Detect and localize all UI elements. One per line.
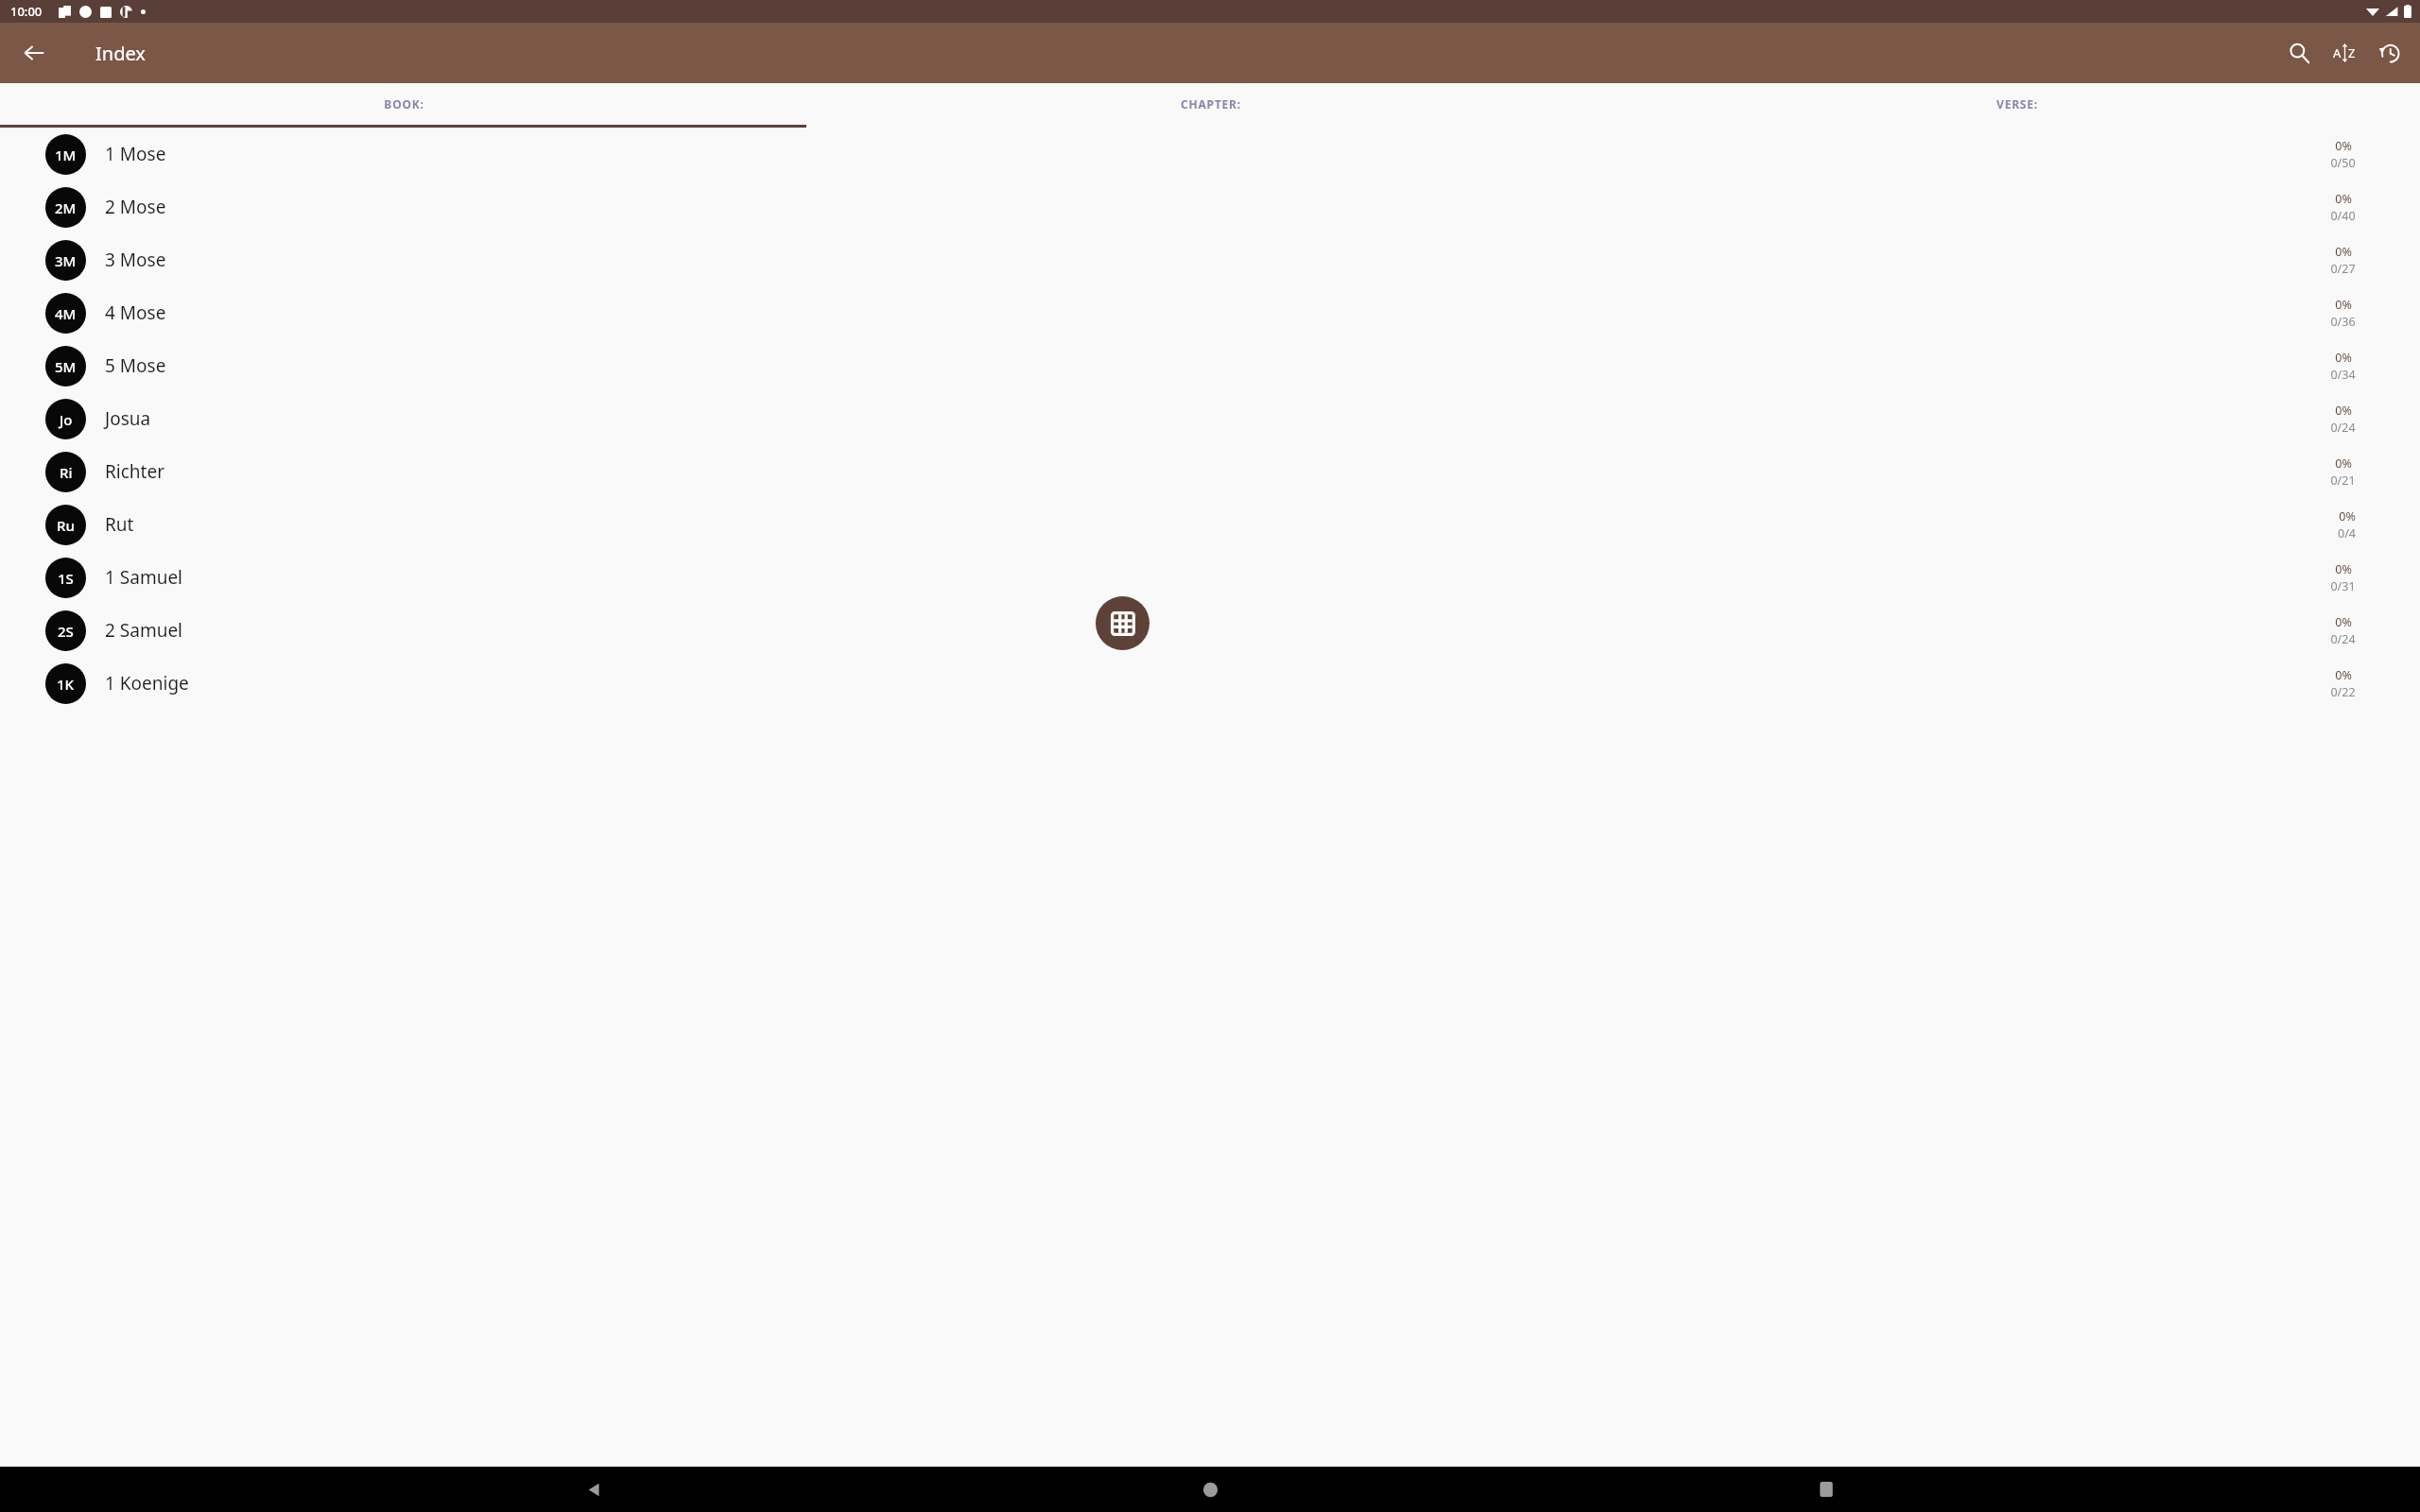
staticText: 0/27 (2330, 261, 2356, 277)
staticText: Ri (60, 463, 73, 482)
staticText: 2M (55, 198, 77, 217)
staticText: 0% (2339, 508, 2356, 524)
button[interactable]: Back (571, 1467, 616, 1512)
button[interactable]: Ru (0, 498, 2420, 551)
button[interactable]: 3M (0, 233, 2420, 286)
staticText: BOOK: (384, 96, 424, 112)
staticText: 5 Mose (105, 353, 166, 378)
button[interactable]: VERSE: (1614, 83, 2420, 125)
staticText: Richter (105, 459, 165, 484)
button[interactable]: BOOK: (0, 83, 807, 125)
button[interactable]: 1M (0, 128, 2420, 180)
staticText: 2S (58, 622, 74, 641)
button[interactable]: 2S (0, 604, 2420, 657)
staticText: 0% (2335, 614, 2352, 630)
staticText: 1 Koenige (105, 671, 189, 696)
staticText: 0/34 (2330, 367, 2356, 383)
button[interactable]: History (2367, 30, 2412, 76)
button[interactable]: Search (2276, 30, 2322, 76)
staticText: 0% (2335, 561, 2352, 577)
button[interactable]: CHAPTER: (807, 83, 1614, 125)
button[interactable]: Recent apps (1804, 1467, 1849, 1512)
button[interactable]: 4M (0, 286, 2420, 339)
staticText: 0% (2335, 244, 2352, 260)
button[interactable]: 5M (0, 339, 2420, 392)
staticText: 1S (58, 569, 74, 588)
staticText: 0% (2335, 667, 2352, 683)
button[interactable]: 2M (0, 180, 2420, 233)
staticText: 0/21 (2330, 472, 2356, 489)
staticText: 1K (57, 675, 75, 694)
staticText: 0% (2335, 297, 2352, 313)
staticText: 0/22 (2330, 684, 2356, 700)
staticText: 1M (55, 146, 77, 164)
staticText: Josua (105, 406, 151, 431)
button[interactable]: Jo (0, 392, 2420, 445)
staticText: Index (95, 41, 146, 66)
staticText: Z (2348, 44, 2356, 61)
button[interactable]: Grid view (1096, 596, 1149, 650)
button[interactable]: Ri (0, 445, 2420, 498)
staticText: 0/36 (2330, 314, 2356, 330)
staticText: Ru (57, 516, 75, 535)
staticText: 0% (2335, 403, 2352, 419)
button[interactable]: Home (1187, 1467, 1233, 1512)
staticText: 10:00 (10, 3, 43, 20)
staticText: 2 Samuel (105, 618, 183, 643)
button[interactable]: Sort alphabetically (2322, 30, 2367, 76)
staticText: 4M (55, 304, 77, 323)
staticText: A (2333, 44, 2342, 61)
staticText: 3M (55, 251, 77, 270)
staticText: 0/50 (2330, 155, 2356, 171)
staticText: 1 Mose (105, 142, 166, 166)
staticText: 4 Mose (105, 301, 166, 325)
staticText: VERSE: (1996, 96, 2038, 112)
staticText: Rut (105, 512, 134, 537)
button[interactable]: 1S (0, 551, 2420, 604)
button[interactable]: 1K (0, 657, 2420, 710)
staticText: 0% (2335, 138, 2352, 154)
staticText: CHAPTER: (1181, 96, 1241, 112)
staticText: 0/40 (2330, 208, 2356, 224)
staticText: 0/31 (2330, 578, 2356, 594)
staticText: Jo (60, 410, 73, 429)
staticText: 0/4 (2338, 525, 2356, 541)
staticText: 0% (2335, 455, 2352, 472)
staticText: 0% (2335, 191, 2352, 207)
staticText: 0% (2335, 350, 2352, 366)
staticText: 0/24 (2330, 631, 2356, 647)
staticText: 1 Samuel (105, 565, 183, 590)
staticText: 0/24 (2330, 420, 2356, 436)
staticText: 3 Mose (105, 248, 166, 272)
staticText: 5M (55, 357, 77, 376)
button[interactable]: Back (11, 30, 57, 76)
staticText: 2 Mose (105, 195, 166, 219)
